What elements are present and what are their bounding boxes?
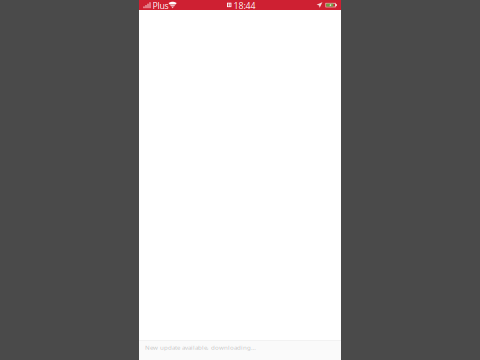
staticText: 18:44 [233,0,255,12]
staticText: New update available, downloading… [145,343,256,352]
staticText: Plus [152,0,168,12]
button[interactable]: New update available, downloading… [139,341,341,360]
